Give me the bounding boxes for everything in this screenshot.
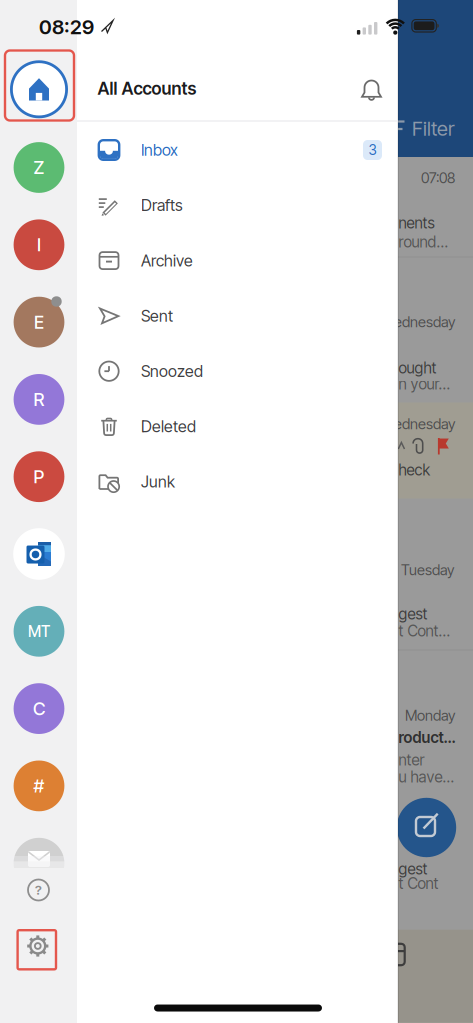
button[interactable]: Settings (18, 926, 58, 966)
button[interactable]: Account MT (13, 605, 65, 657)
staticText: nents (398, 214, 434, 232)
staticText: Snoozed (141, 361, 203, 381)
button[interactable]: Account (13, 837, 65, 889)
staticText: Sent (141, 306, 173, 326)
staticText: ? (35, 882, 42, 898)
button[interactable]: Snoozed (77, 344, 398, 399)
button[interactable]: Junk (77, 454, 398, 509)
staticText: Junk (141, 472, 175, 491)
staticText: E (34, 311, 44, 333)
staticText: C (33, 698, 45, 719)
staticText: Filter (412, 116, 455, 141)
staticText: 08:29 (39, 15, 94, 39)
staticText: Z (33, 157, 44, 178)
staticText: round... (398, 233, 448, 251)
button[interactable]: Compose (396, 797, 456, 857)
staticText: Monday (405, 707, 455, 724)
button[interactable]: Deleted (77, 399, 398, 454)
staticText: roduct... (398, 728, 455, 747)
staticText: Wednesday (381, 313, 455, 331)
button[interactable]: Inbox (77, 122, 398, 178)
button[interactable]: Account Z (13, 141, 65, 193)
staticText: I (37, 234, 41, 256)
button[interactable]: Account R (13, 373, 65, 425)
button[interactable]: Account E (13, 296, 65, 348)
staticText: Tuesday (401, 561, 454, 579)
button[interactable]: Account P (13, 451, 65, 503)
button[interactable]: Account I (13, 219, 65, 271)
button[interactable]: Notifications (355, 73, 387, 105)
button[interactable]: Add account (13, 528, 65, 580)
button[interactable]: Drafts (77, 178, 398, 233)
staticText: P (33, 466, 44, 488)
staticText: ednesday (394, 415, 455, 433)
staticText: 3 (368, 141, 376, 158)
staticText: t Cont (398, 874, 438, 893)
staticText: Drafts (141, 196, 183, 215)
staticText: Archive (141, 251, 193, 270)
staticText: gest (398, 605, 427, 623)
button[interactable]: Help (23, 875, 53, 905)
staticText: ought (398, 359, 436, 377)
staticText: u have... (398, 768, 454, 786)
button[interactable]: Account # (13, 760, 65, 812)
staticText: n your... (398, 375, 450, 393)
staticText: MT (28, 622, 50, 641)
button[interactable]: Home (10, 60, 68, 118)
button[interactable]: Archive (77, 233, 398, 288)
staticText: 07:08 (421, 169, 455, 187)
button[interactable]: Sent (77, 288, 398, 343)
staticText: heck (398, 461, 430, 479)
staticText: R (33, 388, 44, 410)
staticText: gest (398, 860, 427, 878)
staticText: t Cont... (398, 622, 450, 640)
button[interactable]: Account C (13, 683, 65, 735)
staticText: Deleted (141, 417, 196, 436)
staticText: All Accounts (97, 78, 196, 99)
staticText: Inbox (141, 140, 178, 160)
staticText: nter (398, 751, 424, 769)
staticText: # (33, 775, 44, 797)
